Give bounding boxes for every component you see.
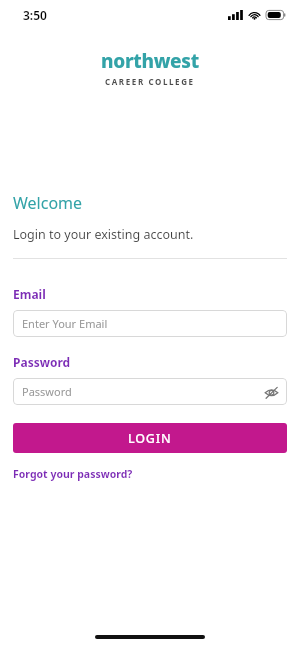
staticText: Login to your existing account. (13, 226, 194, 243)
staticText: Password (13, 354, 71, 370)
button[interactable]: Password (13, 378, 287, 405)
button[interactable]: Show password (263, 384, 279, 400)
staticText: Forgot your password? (13, 467, 133, 481)
staticText: Password (22, 384, 72, 399)
staticText: Email (13, 286, 46, 302)
staticText: LOGIN (128, 430, 172, 447)
button[interactable]: LOGIN (13, 423, 287, 453)
staticText: 3:50 (23, 7, 47, 23)
staticText: Welcome (13, 192, 83, 214)
button[interactable]: Enter Your Email (13, 310, 287, 337)
button[interactable]: Forgot your password? (13, 467, 133, 481)
staticText: northwest (101, 48, 199, 74)
staticText: CAREER COLLEGE (105, 76, 195, 87)
staticText: Enter Your Email (22, 316, 108, 331)
